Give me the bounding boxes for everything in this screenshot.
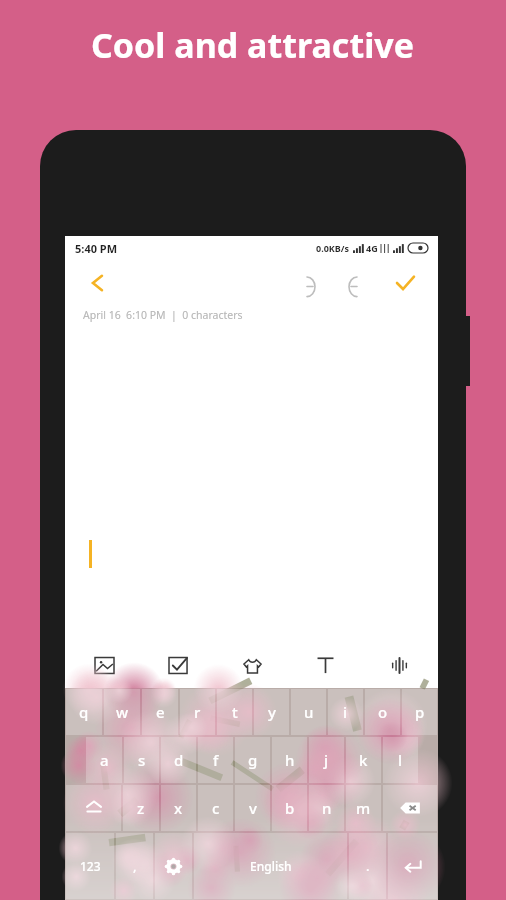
staticText: r [194, 702, 201, 722]
button[interactable]: Theme [235, 648, 269, 682]
button[interactable]: u [291, 689, 326, 735]
staticText: 5:40 PM [75, 241, 118, 256]
button[interactable]: Save [388, 266, 422, 300]
button[interactable]: y [254, 689, 289, 735]
button[interactable]: z [123, 785, 159, 831]
button[interactable]: Settings [155, 833, 192, 899]
button[interactable]: d [161, 737, 196, 783]
button[interactable]: s [124, 737, 159, 783]
staticText: o [378, 702, 388, 722]
button[interactable]: n [309, 785, 344, 831]
staticText: f [213, 750, 219, 770]
staticText: b [285, 798, 295, 818]
button[interactable]: w [104, 689, 140, 735]
button[interactable]: Shift [66, 785, 121, 831]
button[interactable]: g [235, 737, 270, 783]
staticText: April 16 6:10 PM | 0 characters [83, 308, 243, 322]
staticText: l [398, 750, 403, 770]
button[interactable]: j [309, 737, 344, 783]
button[interactable]: Checklist [161, 648, 195, 682]
button[interactable]: Enter [388, 833, 437, 899]
button[interactable]: q [66, 689, 102, 735]
staticText: u [304, 702, 314, 722]
button[interactable]: e [142, 689, 178, 735]
button[interactable]: English [194, 833, 347, 899]
button[interactable]: Text style [308, 648, 342, 682]
button[interactable]: , [116, 833, 153, 899]
staticText: a [100, 750, 109, 770]
staticText: s [138, 750, 146, 770]
button[interactable]: k [346, 737, 381, 783]
staticText: Cool and attractive [91, 22, 415, 68]
staticText: 0.0KB/s [316, 242, 350, 254]
button[interactable]: Back [81, 266, 115, 300]
button[interactable]: h [272, 737, 307, 783]
staticText: p [415, 702, 425, 722]
button[interactable]: x [161, 785, 196, 831]
staticText: h [285, 750, 295, 770]
button[interactable]: t [217, 689, 252, 735]
staticText: w [116, 702, 129, 722]
button[interactable]: f [198, 737, 233, 783]
button[interactable]: Undo [290, 266, 324, 300]
button[interactable]: 123 [66, 833, 114, 899]
button[interactable]: v [235, 785, 270, 831]
button[interactable]: l [383, 737, 418, 783]
button[interactable]: m [346, 785, 381, 831]
staticText: c [212, 798, 220, 818]
staticText: 4G [366, 242, 378, 254]
button[interactable]: Insert image [87, 648, 121, 682]
staticText: k [359, 750, 368, 770]
button[interactable]: c [198, 785, 233, 831]
staticText: g [248, 750, 258, 770]
staticText: m [356, 798, 371, 818]
staticText: 123 [80, 858, 101, 874]
button[interactable]: a [86, 737, 122, 783]
button[interactable]: Redo [340, 266, 374, 300]
button[interactable]: o [365, 689, 400, 735]
staticText: z [137, 798, 145, 818]
staticText: y [268, 702, 276, 722]
button[interactable]: b [272, 785, 307, 831]
staticText: q [79, 702, 89, 722]
staticText: x [174, 798, 183, 818]
staticText: t [232, 702, 238, 722]
button[interactable]: r [180, 689, 215, 735]
staticText: . [366, 857, 370, 875]
staticText: , [133, 857, 137, 875]
staticText: v [249, 798, 257, 818]
button[interactable]: Record audio [382, 648, 416, 682]
staticText: n [322, 798, 332, 818]
button[interactable]: . [349, 833, 386, 899]
staticText: d [174, 750, 184, 770]
staticText: j [324, 750, 329, 770]
staticText: i [343, 702, 348, 722]
button[interactable]: i [328, 689, 363, 735]
staticText: English [250, 858, 292, 874]
button[interactable]: p [402, 689, 437, 735]
staticText: e [156, 702, 165, 722]
button[interactable]: Backspace [383, 785, 437, 831]
